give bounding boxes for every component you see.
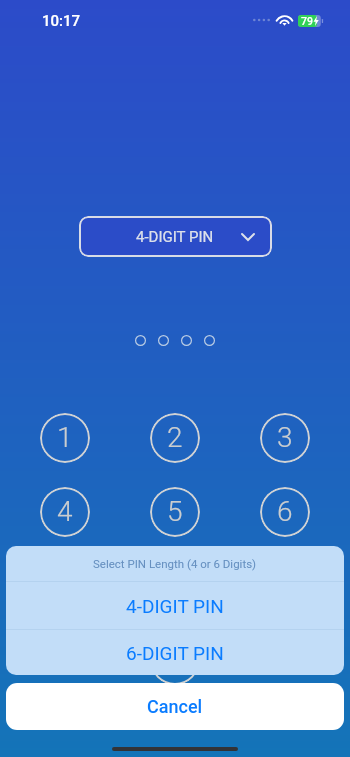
staticText: 1: [57, 421, 73, 454]
staticText: 4: [57, 495, 73, 528]
staticText: 4-DIGIT PIN: [136, 228, 214, 246]
button[interactable]: 0: [150, 635, 200, 685]
staticText: Cancel: [147, 696, 203, 717]
staticText: 3: [277, 421, 293, 454]
button[interactable]: 6-DIGIT PIN: [6, 630, 344, 675]
button[interactable]: 4-DIGIT PIN: [79, 216, 272, 257]
button[interactable]: 6: [260, 487, 310, 537]
button[interactable]: 8: [150, 561, 200, 611]
staticText: 6: [277, 495, 293, 528]
staticText: 4-DIGIT PIN: [126, 595, 224, 617]
staticText: 10:17: [42, 12, 81, 30]
staticText: 8: [167, 569, 183, 602]
staticText: 0: [167, 643, 183, 676]
staticText: 6-DIGIT PIN: [126, 642, 224, 664]
button[interactable]: 2: [150, 413, 200, 463]
staticText: 2: [167, 421, 183, 454]
button[interactable]: 4-DIGIT PIN: [6, 582, 344, 629]
button[interactable]: 3: [260, 413, 310, 463]
button[interactable]: 1: [40, 413, 90, 463]
button[interactable]: Cancel: [6, 683, 344, 730]
button[interactable]: 4: [40, 487, 90, 537]
button[interactable]: 5: [150, 487, 200, 537]
staticText: 5: [167, 495, 183, 528]
staticText: Select PIN Length (4 or 6 Digits): [93, 557, 257, 570]
staticText: 79: [301, 15, 313, 27]
